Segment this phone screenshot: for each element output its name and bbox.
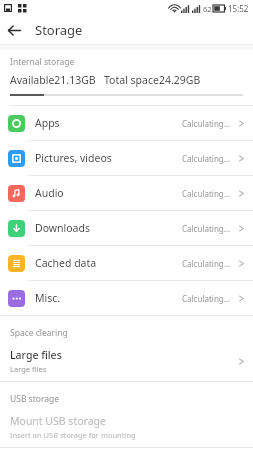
button[interactable]: Cached data [0, 246, 253, 280]
staticText: Large files [10, 364, 47, 374]
button[interactable]: Large files [0, 346, 253, 381]
staticText: 15:52 [228, 3, 249, 14]
staticText: Mount USB storage [10, 414, 106, 428]
button[interactable]: Audio [0, 176, 253, 210]
staticText: Cached data [35, 256, 97, 270]
staticText: Audio [35, 186, 64, 200]
button[interactable]: Pictures, videos [0, 141, 253, 175]
staticText: USB storage [10, 393, 60, 405]
staticText: Space clearing [10, 327, 68, 339]
staticText: 62 [203, 4, 212, 14]
button[interactable]: Misc. [0, 281, 253, 315]
staticText: Large files [10, 348, 62, 362]
staticText: Insert an USB storage for mounting [10, 430, 136, 440]
staticText: Calculating... [182, 118, 231, 129]
staticText: Total space24.29GB [104, 73, 201, 87]
staticText: Internal storage [10, 56, 75, 68]
staticText: Misc. [35, 291, 61, 305]
staticText: Calculating... [182, 188, 231, 199]
button[interactable]: Back [0, 16, 28, 44]
staticText: Available21.13GB [10, 73, 96, 87]
staticText: Calculating... [182, 223, 231, 234]
button[interactable]: Downloads [0, 211, 253, 245]
staticText: Storage [35, 21, 83, 39]
staticText: Calculating... [182, 258, 231, 269]
staticText: Apps [35, 116, 60, 130]
button[interactable]: Apps [0, 106, 253, 140]
staticText: Downloads [35, 221, 90, 235]
staticText: Calculating... [182, 293, 231, 304]
staticText: Calculating... [182, 153, 231, 164]
staticText: Pictures, videos [35, 151, 112, 165]
